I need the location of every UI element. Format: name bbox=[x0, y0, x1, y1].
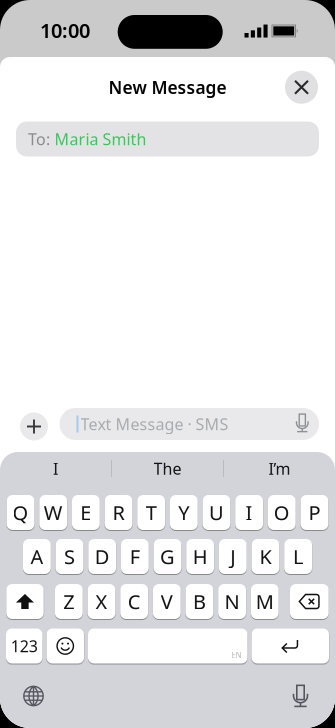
button[interactable]: W bbox=[39, 495, 67, 530]
button[interactable]: R bbox=[105, 495, 132, 530]
staticText: 10:00 bbox=[40, 17, 90, 44]
staticText: S bbox=[64, 543, 75, 570]
button[interactable]: S bbox=[56, 539, 83, 574]
button[interactable]: Close bbox=[285, 71, 318, 104]
button[interactable]: A bbox=[23, 539, 51, 574]
button[interactable]: I’m bbox=[224, 452, 335, 485]
staticText: New Message bbox=[108, 76, 226, 99]
staticText: L bbox=[293, 543, 303, 570]
staticText: U bbox=[209, 499, 224, 526]
button[interactable]: 123 bbox=[6, 628, 42, 663]
button[interactable]: L bbox=[284, 539, 312, 574]
button[interactable]: Emoji bbox=[46, 628, 84, 663]
staticText: EN bbox=[231, 650, 241, 660]
staticText: I bbox=[53, 458, 58, 479]
staticText: The bbox=[153, 458, 181, 479]
button[interactable]: Delete bbox=[290, 584, 329, 619]
button[interactable]: The bbox=[112, 452, 223, 485]
staticText: C bbox=[128, 588, 141, 615]
staticText: H bbox=[193, 543, 208, 570]
staticText: Y bbox=[178, 499, 189, 526]
button[interactable]: Dictate bbox=[294, 414, 311, 434]
button[interactable]: F bbox=[121, 539, 149, 574]
button[interactable]: Dictation bbox=[290, 684, 311, 707]
staticText: R bbox=[112, 499, 124, 526]
staticText: G bbox=[160, 543, 175, 570]
button[interactable]: I bbox=[235, 495, 263, 530]
staticText: O bbox=[274, 499, 290, 526]
button[interactable]: Add attachment bbox=[20, 410, 48, 438]
staticText: To: bbox=[28, 128, 50, 150]
button[interactable]: return bbox=[251, 628, 329, 663]
button[interactable]: P bbox=[300, 495, 328, 530]
staticText: F bbox=[130, 543, 140, 570]
button[interactable]: X bbox=[88, 584, 115, 619]
staticText: T bbox=[146, 499, 157, 526]
button[interactable]: Text Message bbox=[59, 408, 319, 440]
staticText: W bbox=[44, 499, 63, 526]
button[interactable]: D bbox=[88, 539, 116, 574]
staticText: N bbox=[225, 588, 240, 615]
button[interactable]: H bbox=[186, 539, 214, 574]
button[interactable]: space bbox=[88, 628, 247, 663]
button[interactable]: Y bbox=[170, 495, 198, 530]
button[interactable]: G bbox=[154, 539, 181, 574]
button[interactable]: M bbox=[251, 584, 279, 619]
button[interactable]: K bbox=[251, 539, 279, 574]
staticText: I’m bbox=[268, 458, 290, 479]
staticText: M bbox=[256, 588, 274, 615]
button[interactable]: E bbox=[72, 495, 100, 530]
staticText: Z bbox=[63, 588, 74, 615]
button[interactable]: Shift bbox=[6, 584, 44, 619]
staticText: Text Message · SMS bbox=[80, 413, 228, 435]
button[interactable]: U bbox=[203, 495, 230, 530]
button[interactable]: B bbox=[185, 584, 213, 619]
staticText: X bbox=[95, 588, 107, 615]
button[interactable]: I bbox=[0, 452, 111, 485]
button[interactable]: To: bbox=[16, 121, 319, 156]
button[interactable]: N bbox=[218, 584, 246, 619]
staticText: Q bbox=[13, 499, 29, 526]
button[interactable]: V bbox=[153, 584, 181, 619]
button[interactable]: Q bbox=[7, 495, 34, 530]
button[interactable]: O bbox=[268, 495, 296, 530]
button[interactable]: Z bbox=[55, 584, 83, 619]
staticText: D bbox=[95, 543, 110, 570]
staticText: K bbox=[259, 543, 271, 570]
staticText: 123 bbox=[11, 635, 38, 657]
staticText: B bbox=[193, 588, 206, 615]
staticText: J bbox=[230, 543, 235, 570]
button[interactable]: C bbox=[120, 584, 148, 619]
staticText: A bbox=[30, 543, 43, 570]
staticText: I bbox=[246, 499, 253, 526]
staticText: P bbox=[308, 499, 320, 526]
staticText: V bbox=[161, 588, 173, 615]
staticText: Maria Smith bbox=[54, 128, 146, 150]
button[interactable]: Next keyboard bbox=[23, 685, 44, 706]
staticText: E bbox=[80, 499, 91, 526]
button[interactable]: T bbox=[137, 495, 165, 530]
button[interactable]: J bbox=[219, 539, 247, 574]
